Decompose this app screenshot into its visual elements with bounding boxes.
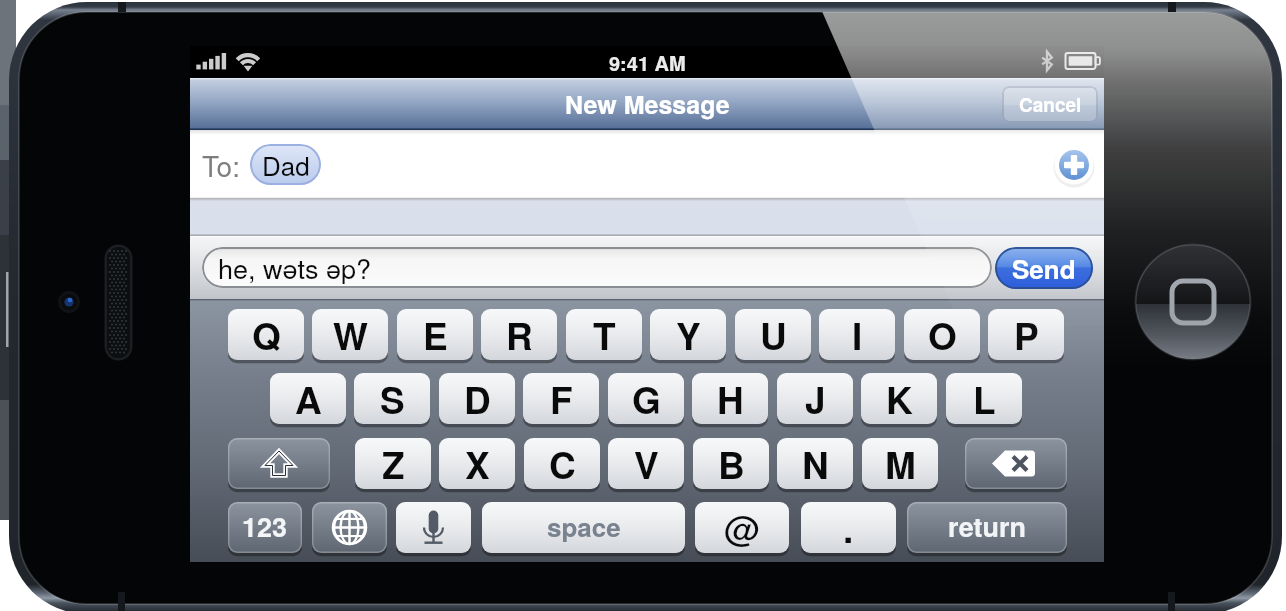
button[interactable]: E (397, 309, 473, 360)
button[interactable]: C (524, 438, 600, 489)
staticText: Dad (262, 146, 310, 183)
button[interactable]: A (270, 373, 346, 424)
button[interactable]: . (801, 502, 896, 553)
staticText: Cancel (1019, 91, 1082, 118)
staticText: B (718, 437, 745, 488)
button[interactable]: @ (695, 502, 789, 553)
button[interactable]: space (482, 502, 685, 553)
button[interactable]: G (608, 373, 684, 424)
button[interactable]: X (439, 438, 515, 489)
button[interactable]: Delete (965, 438, 1067, 489)
staticText: To: (202, 145, 240, 185)
button[interactable]: V (608, 438, 684, 489)
staticText: K (886, 372, 913, 423)
staticText: J (805, 372, 826, 423)
button[interactable]: R (481, 309, 557, 360)
button[interactable]: T (566, 309, 642, 360)
button[interactable]: P (988, 309, 1064, 360)
button[interactable]: Q (228, 309, 304, 360)
button[interactable]: S (354, 373, 430, 424)
button[interactable]: Cancel (1002, 86, 1098, 123)
button[interactable]: return (907, 502, 1067, 553)
staticText: @ (724, 501, 761, 552)
button[interactable]: O (904, 309, 980, 360)
button[interactable]: J (777, 373, 853, 424)
button[interactable]: I (819, 309, 895, 360)
staticText: he, wəts əp? (218, 248, 372, 287)
staticText: 123 (242, 507, 288, 546)
staticText: C (549, 437, 576, 488)
button[interactable]: D (439, 373, 515, 424)
staticText: P (1014, 308, 1039, 359)
button[interactable]: Shift (228, 438, 330, 489)
button[interactable]: W (312, 309, 388, 360)
button[interactable]: H (692, 373, 768, 424)
staticText: Z (382, 437, 405, 488)
button[interactable]: U (735, 309, 811, 360)
staticText: D (464, 372, 491, 423)
button[interactable]: F (523, 373, 599, 424)
staticText: N (802, 437, 829, 488)
staticText: L (973, 372, 996, 423)
button[interactable]: K (861, 373, 937, 424)
button[interactable]: To: (190, 130, 1104, 199)
button[interactable]: Change keyboard (312, 502, 387, 553)
staticText: W (333, 308, 368, 359)
staticText: Q (252, 308, 281, 359)
staticText: Send (1012, 250, 1076, 287)
staticText: New Message (565, 86, 730, 122)
staticText: H (717, 372, 744, 423)
staticText: U (760, 308, 787, 359)
button[interactable]: Y (650, 309, 726, 360)
button[interactable]: he, wəts əp? (202, 247, 992, 288)
staticText: 9:41 AM (609, 48, 686, 77)
staticText: X (465, 437, 490, 488)
staticText: O (928, 308, 957, 359)
button[interactable]: Send (995, 247, 1093, 289)
staticText: V (634, 437, 659, 488)
staticText: space (547, 508, 621, 545)
staticText: S (380, 372, 405, 423)
staticText: Y (676, 308, 701, 359)
staticText: return (948, 507, 1027, 546)
button[interactable]: Dad (250, 144, 321, 185)
button[interactable]: L (946, 373, 1022, 424)
staticText: A (295, 372, 322, 423)
staticText: F (550, 372, 573, 423)
staticText: T (593, 308, 616, 359)
staticText: M (885, 437, 916, 488)
button[interactable]: 123 (228, 502, 302, 553)
button[interactable] (190, 199, 1104, 236)
staticText: R (506, 308, 533, 359)
button[interactable]: B (693, 438, 769, 489)
button[interactable]: M (862, 438, 938, 489)
button[interactable]: Z (355, 438, 431, 489)
staticText: . (843, 501, 854, 552)
button[interactable]: N (777, 438, 853, 489)
button[interactable]: Add contact (1053, 144, 1095, 186)
staticText: G (632, 372, 661, 423)
button[interactable]: Dictate (396, 502, 471, 553)
staticText: I (852, 308, 863, 359)
staticText: E (423, 308, 448, 359)
